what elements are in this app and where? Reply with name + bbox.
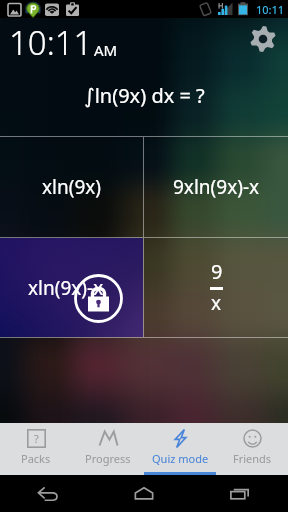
staticText: 10:11 xyxy=(256,2,285,17)
staticText: Packs xyxy=(21,451,51,466)
button[interactable]: 9 xyxy=(144,238,288,337)
staticText: Quiz mode xyxy=(152,451,209,466)
button[interactable]: xln(9x) xyxy=(0,137,143,237)
button[interactable]: Settings xyxy=(247,23,279,55)
button[interactable]: xln(9x)-x xyxy=(0,238,143,337)
staticText: 10:11 xyxy=(9,20,93,62)
staticText: Progress xyxy=(85,451,131,466)
button[interactable]: Progress xyxy=(72,423,144,475)
staticText: x xyxy=(211,290,222,316)
button[interactable]: Quiz mode xyxy=(144,423,216,475)
button[interactable]: ? xyxy=(0,423,72,475)
staticText: 9 xyxy=(211,258,223,285)
button[interactable]: 9xln(9x)-x xyxy=(144,137,288,237)
staticText: ∫ln(9x) dx = ? xyxy=(84,82,205,109)
staticText: xln(9x) xyxy=(42,174,102,200)
button[interactable]: Back xyxy=(0,475,96,512)
button[interactable]: Friends xyxy=(216,423,288,475)
staticText: xln(9x)-x xyxy=(28,275,104,301)
staticText: ? xyxy=(34,431,39,446)
staticText: AM xyxy=(94,40,118,60)
button[interactable]: Recents xyxy=(192,475,288,512)
staticText: Friends xyxy=(233,451,272,466)
staticText: 9xln(9x)-x xyxy=(173,174,260,200)
button[interactable]: Home xyxy=(96,475,192,512)
